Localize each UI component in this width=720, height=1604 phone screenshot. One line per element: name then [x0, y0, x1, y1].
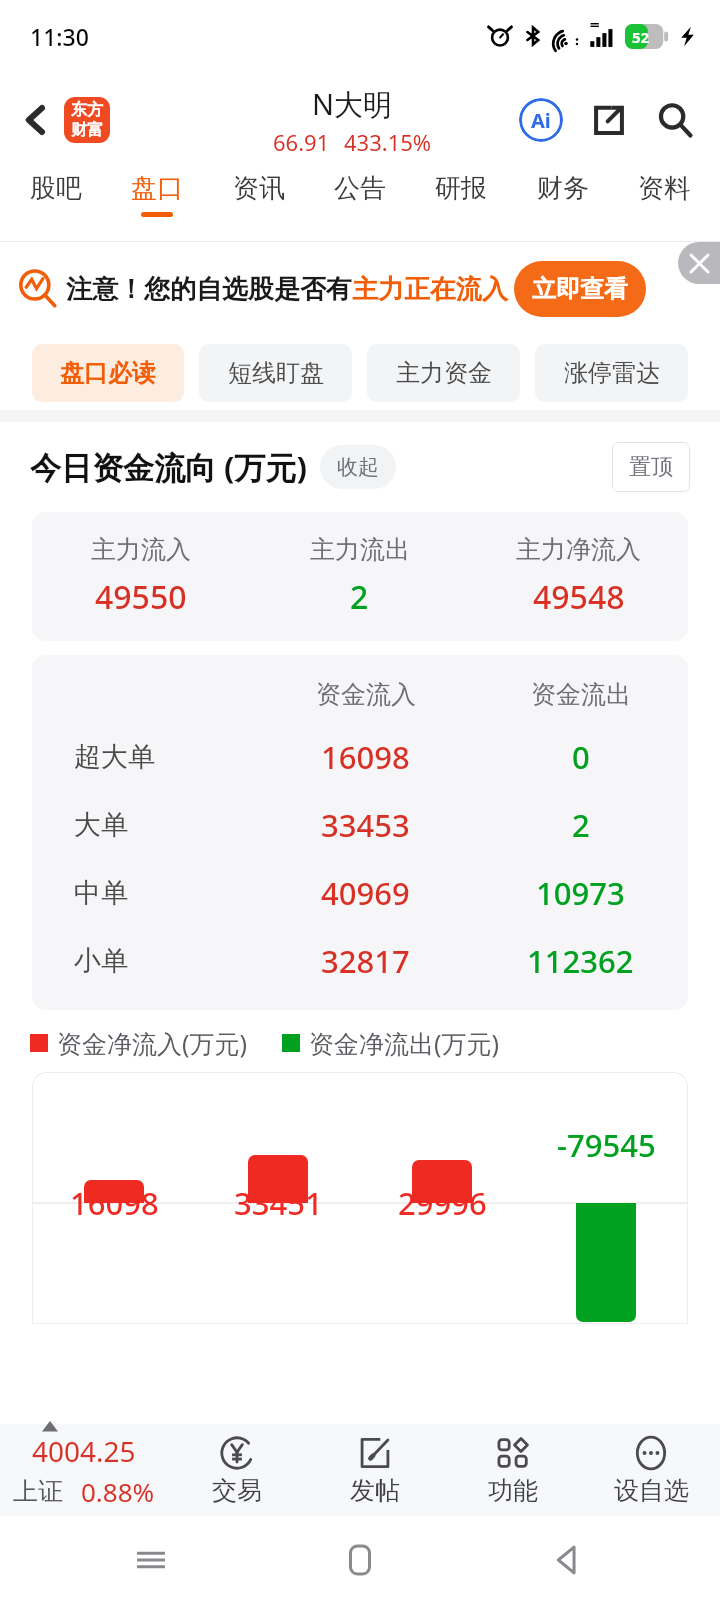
button[interactable]: 资料 — [634, 168, 694, 221]
staticText: 40969 — [321, 872, 410, 914]
staticText: 大单 — [74, 808, 128, 842]
button[interactable]: Close banner — [678, 242, 720, 284]
button[interactable]: 公告 — [330, 168, 390, 221]
staticText: 资料 — [638, 172, 690, 205]
staticText: 资金流出 — [531, 679, 631, 710]
staticText: 资金流入 — [316, 679, 416, 710]
button[interactable]: 资讯 — [229, 168, 289, 221]
button[interactable]: 主力资金 — [367, 344, 520, 402]
staticText: 超大单 — [74, 740, 155, 774]
staticText: 433.15% — [344, 127, 432, 157]
staticText: 49550 — [95, 575, 187, 619]
button[interactable]: 盘口 — [127, 168, 187, 221]
staticText: 立即查看 — [532, 274, 628, 304]
staticText: 涨停雷达 — [564, 358, 660, 388]
button[interactable]: 4004.25 — [0, 1424, 167, 1516]
staticText: 29996 — [398, 1182, 487, 1224]
button[interactable]: Back — [544, 1535, 594, 1585]
staticText: 盘口必读 — [60, 358, 156, 388]
staticText: 注意！您的自选股是否有 — [66, 273, 352, 306]
staticText: 2 — [350, 575, 369, 619]
staticText: 交易 — [212, 1475, 262, 1506]
staticText: 0 — [572, 736, 590, 778]
button[interactable]: 财务 — [533, 168, 593, 221]
staticText: 研报 — [435, 172, 487, 205]
button[interactable]: 盘口必读 — [32, 344, 184, 402]
staticText: 10973 — [536, 872, 625, 914]
button[interactable]: Search — [650, 95, 700, 145]
staticText: 33451 — [234, 1182, 323, 1224]
staticText: 2 — [572, 804, 590, 846]
button[interactable]: 交易 — [167, 1424, 306, 1516]
staticText: 16098 — [321, 736, 410, 778]
button[interactable]: 功能 — [444, 1424, 582, 1516]
staticText: Ai — [531, 107, 551, 134]
staticText: 32817 — [321, 940, 410, 982]
staticText: 112362 — [527, 940, 634, 982]
staticText: 资金净流出(万元) — [309, 1026, 500, 1060]
button[interactable]: 主力流入 — [32, 512, 688, 641]
staticText: 4004.25 — [32, 1432, 136, 1470]
staticText: 52 — [632, 27, 650, 47]
staticText: 发帖 — [350, 1475, 400, 1506]
button[interactable]: 涨停雷达 — [535, 344, 688, 402]
staticText: 主力净流入 — [516, 534, 641, 565]
button[interactable]: 资金流入 — [32, 655, 688, 1010]
staticText: 公告 — [334, 172, 386, 205]
staticText: 资讯 — [233, 172, 285, 205]
staticText: 设自选 — [614, 1475, 689, 1506]
staticText: 财富 — [71, 120, 103, 140]
staticText: 16098 — [70, 1182, 159, 1224]
button[interactable]: 短线盯盘 — [199, 344, 352, 402]
staticText: 置顶 — [629, 453, 673, 481]
staticText: 盘口 — [131, 172, 183, 205]
button[interactable]: 立即查看 — [514, 261, 646, 317]
staticText: 66.91 — [273, 127, 330, 157]
staticText: 33453 — [321, 804, 410, 846]
staticText: 资金净流入(万元) — [57, 1026, 248, 1060]
staticText: 11:30 — [30, 21, 89, 52]
button[interactable]: 置顶 — [612, 442, 690, 492]
staticText: 主力流入 — [91, 534, 191, 565]
staticText: 今日资金流向 (万元) — [30, 446, 308, 488]
button[interactable]: Recents — [126, 1535, 176, 1585]
staticText: 小单 — [74, 944, 128, 978]
staticText: 中单 — [74, 876, 128, 910]
button[interactable]: 16098 — [32, 1072, 688, 1324]
button[interactable]: AI assistant — [516, 95, 566, 145]
staticText: 东方 — [71, 100, 103, 120]
button[interactable]: Home — [335, 1535, 385, 1585]
button[interactable]: 发帖 — [306, 1424, 444, 1516]
button[interactable]: Back — [12, 96, 60, 144]
staticText: 收起 — [337, 454, 379, 480]
staticText: 主力流出 — [310, 534, 410, 565]
button[interactable]: 设自选 — [582, 1424, 720, 1516]
staticText: 主力正在流入 — [352, 273, 508, 306]
button[interactable]: 研报 — [431, 168, 491, 221]
staticText: 49548 — [533, 575, 625, 619]
staticText: 短线盯盘 — [228, 358, 324, 388]
button[interactable]: 股吧 — [26, 168, 86, 221]
staticText: 财务 — [537, 172, 589, 205]
staticText: 股吧 — [30, 172, 82, 205]
staticText: 功能 — [488, 1475, 538, 1506]
button[interactable]: 收起 — [320, 445, 396, 489]
staticText: 主力资金 — [396, 358, 492, 388]
button[interactable]: East Money — [64, 97, 110, 143]
staticText: 0.88% — [81, 1474, 155, 1509]
staticText: N大明 — [312, 84, 393, 124]
staticText: -79545 — [557, 1124, 656, 1166]
button[interactable]: Share — [584, 95, 634, 145]
staticText: 上证 — [13, 1476, 63, 1507]
